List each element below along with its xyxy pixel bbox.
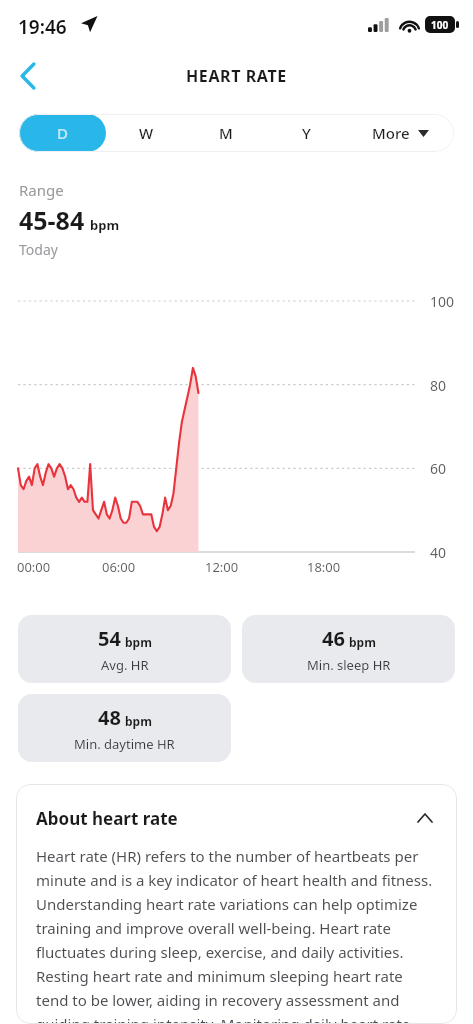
staticText: 100 [430,292,455,311]
button[interactable]: 46 [242,615,455,683]
button[interactable]: About heart rate [36,806,437,830]
button[interactable]: 54 [18,615,231,683]
staticText: 45-84 [19,203,85,237]
staticText: 06:00 [102,558,136,576]
staticText: 18:00 [307,558,341,576]
staticText: bpm [90,216,120,234]
button[interactable]: Back [6,50,50,102]
button[interactable]: D [19,114,106,152]
staticText: bpm [349,634,376,650]
staticText: M [219,123,233,143]
staticText: bpm [125,634,152,650]
staticText: 80 [430,376,447,395]
staticText: Today [19,240,58,259]
staticText: About heart rate [36,807,178,830]
staticText: D [57,123,68,143]
staticText: Heart rate (HR) refers to the number of … [36,846,437,1024]
staticText: Min. sleep HR [307,656,391,674]
button[interactable]: Y [266,114,346,152]
other: Collapse [413,806,437,830]
staticText: bpm [125,713,152,729]
staticText: More [372,123,410,143]
staticText: 54 [98,625,121,652]
staticText: 12:00 [205,558,239,576]
staticText: Y [302,123,311,143]
staticText: 60 [430,459,447,478]
staticText: 48 [98,704,121,731]
staticText: Range [19,180,64,200]
button[interactable]: M [186,114,266,152]
staticText: 46 [322,625,345,652]
staticText: Min. daytime HR [74,735,175,753]
staticText: Avg. HR [101,656,149,674]
staticText: 19:46 [18,14,67,40]
button[interactable]: More [346,114,454,152]
staticText: HEART RATE [186,65,287,87]
staticText: W [139,123,154,143]
staticText: 40 [430,543,447,562]
staticText: 00:00 [17,558,51,576]
button[interactable]: W [106,114,186,152]
staticText: 100 [431,18,449,32]
button[interactable]: 48 [18,694,231,762]
